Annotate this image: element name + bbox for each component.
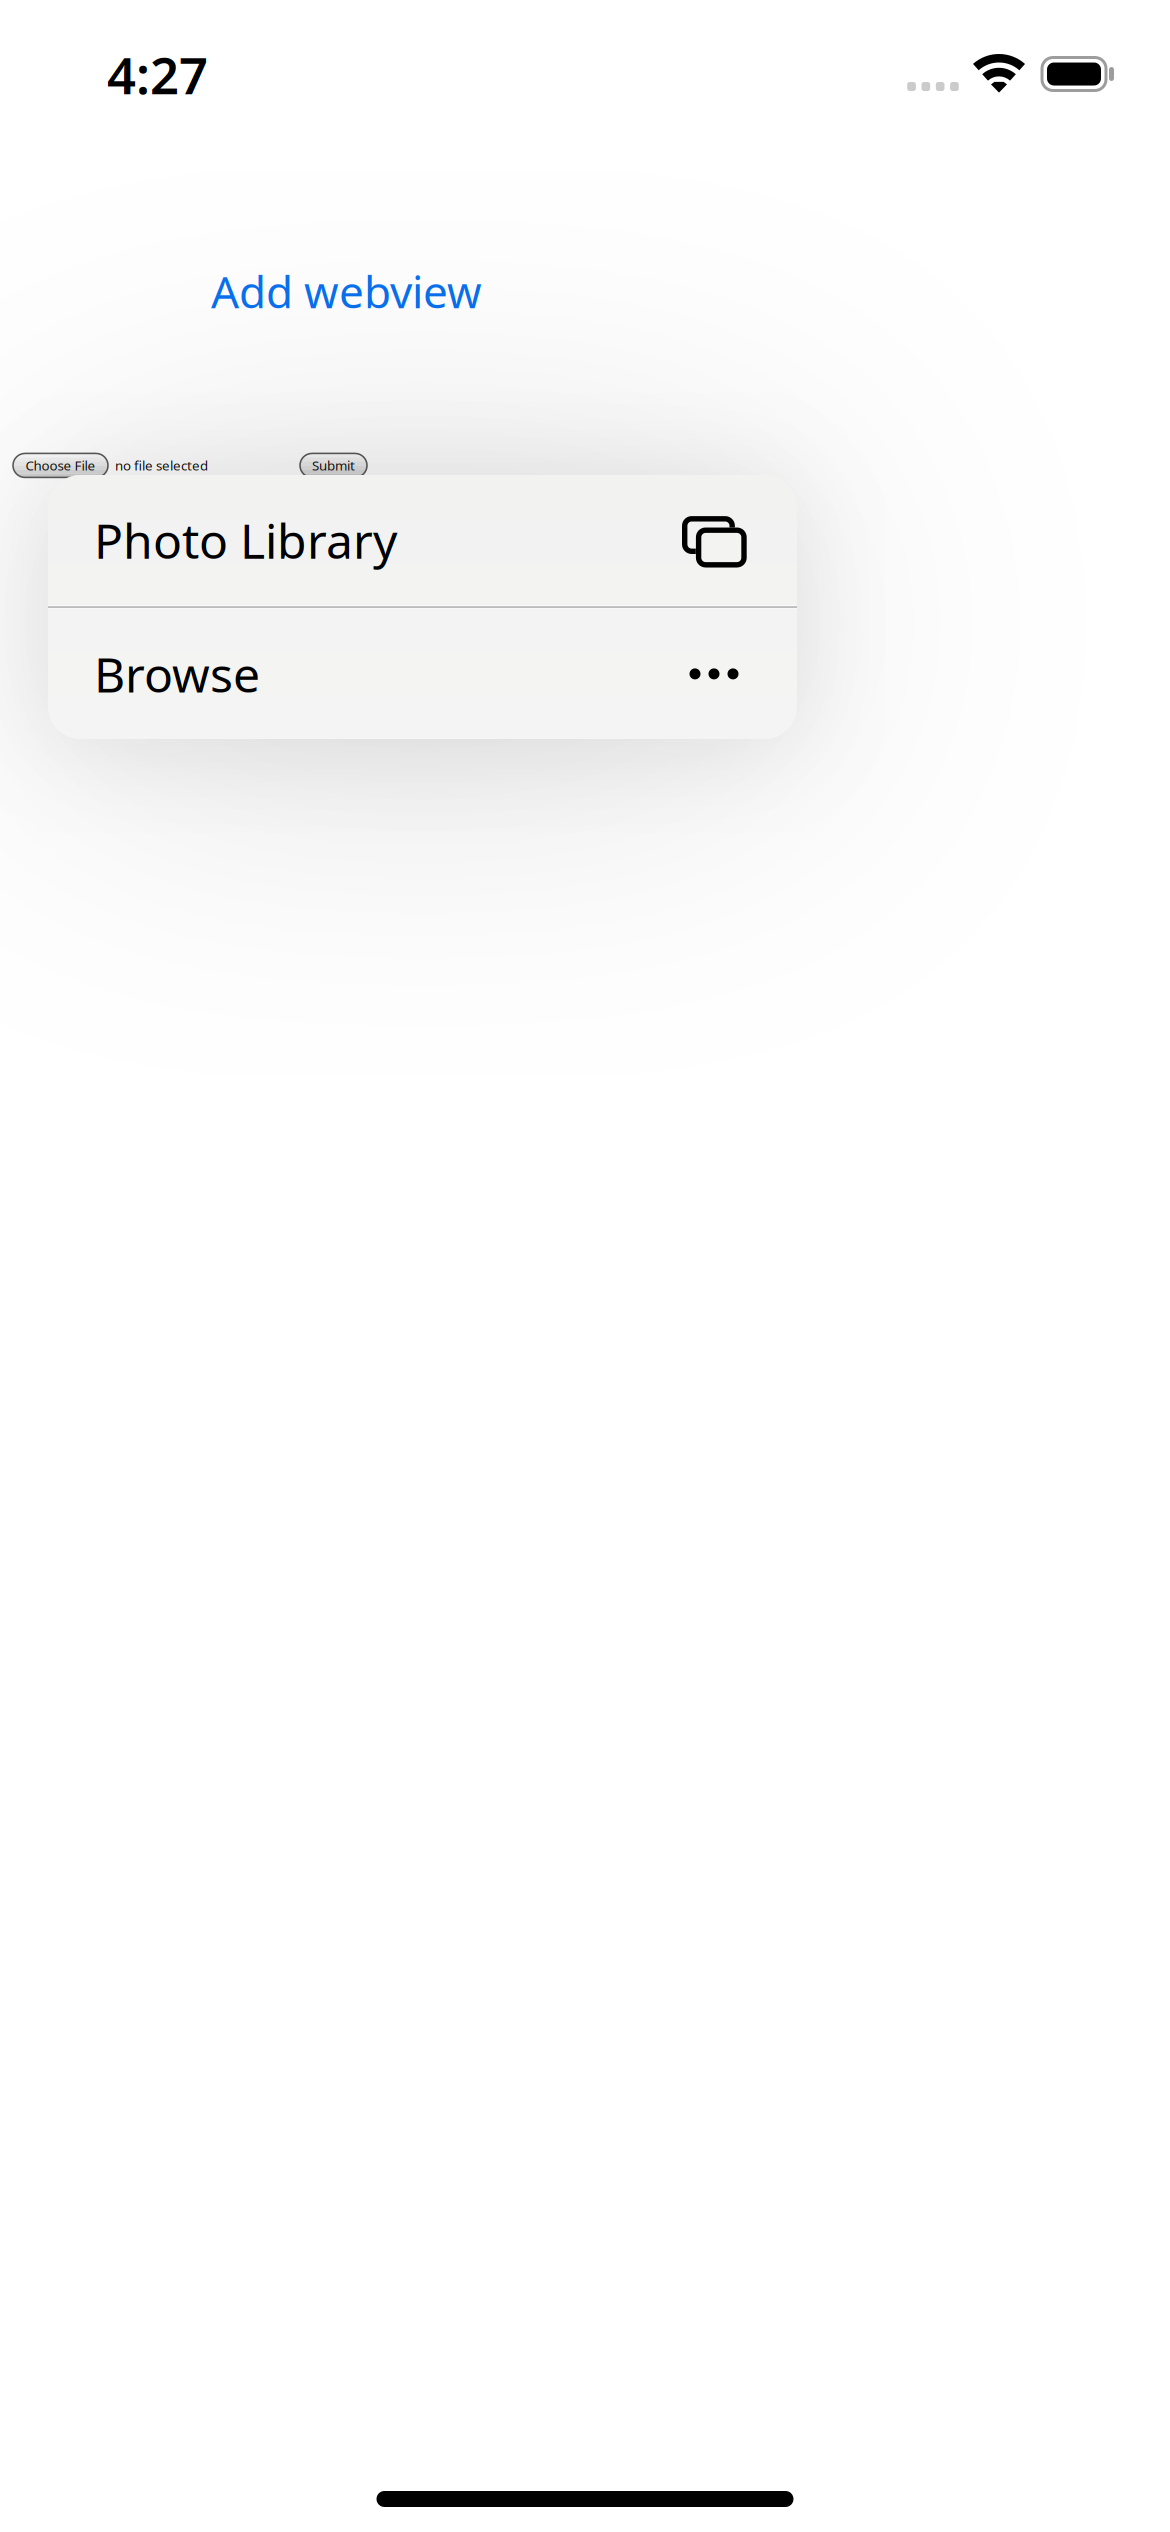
staticText: 4:27: [107, 41, 208, 108]
staticText: no file selected: [115, 457, 208, 474]
staticText: Photo Library: [94, 508, 397, 572]
button[interactable]: Choose File: [13, 453, 108, 477]
button[interactable]: Browse: [48, 609, 797, 739]
button[interactable]: Submit: [300, 453, 367, 477]
staticText: Add webview: [211, 262, 482, 320]
button[interactable]: Photo Library: [48, 475, 797, 605]
button[interactable]: Add webview: [211, 262, 482, 320]
staticText: Choose File: [25, 457, 95, 474]
staticText: Submit: [312, 457, 355, 474]
staticText: Browse: [94, 642, 260, 706]
